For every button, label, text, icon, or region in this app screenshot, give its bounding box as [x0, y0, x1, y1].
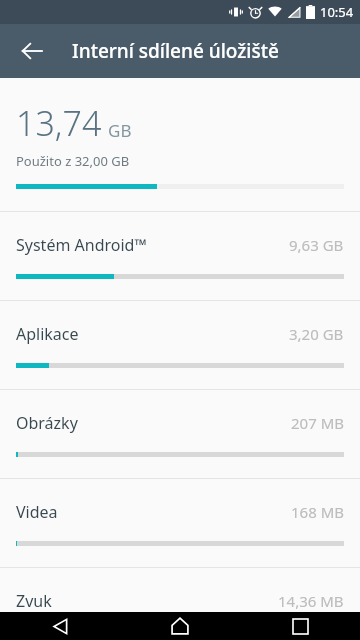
- staticText: Interní sdílené úložiště: [72, 38, 279, 64]
- staticText: 3,20 GB: [289, 324, 344, 344]
- staticText: 9,63 GB: [289, 235, 344, 255]
- staticText: Obrázky: [16, 412, 78, 434]
- button[interactable]: Zvuk: [0, 568, 360, 612]
- button[interactable]: Back: [10, 29, 54, 73]
- staticText: Systém Android™: [16, 234, 147, 256]
- staticText: 168 MB: [291, 502, 344, 522]
- staticText: 207 MB: [291, 413, 344, 433]
- staticText: 14,36 MB: [278, 591, 344, 611]
- staticText: Zvuk: [16, 590, 52, 612]
- button[interactable]: Recent apps: [240, 612, 360, 640]
- button[interactable]: Systém Android™: [0, 212, 360, 301]
- button[interactable]: Obrázky: [0, 390, 360, 479]
- staticText: Videa: [16, 501, 58, 523]
- staticText: Použito z 32,00 GB: [16, 152, 130, 170]
- staticText: GB: [108, 119, 132, 142]
- staticText: 10:54: [320, 3, 354, 21]
- button[interactable]: Home: [120, 612, 240, 640]
- button[interactable]: Videa: [0, 479, 360, 568]
- staticText: Aplikace: [16, 323, 79, 345]
- button[interactable]: Back: [0, 612, 120, 640]
- button[interactable]: Aplikace: [0, 301, 360, 390]
- staticText: 13,74: [16, 100, 102, 146]
